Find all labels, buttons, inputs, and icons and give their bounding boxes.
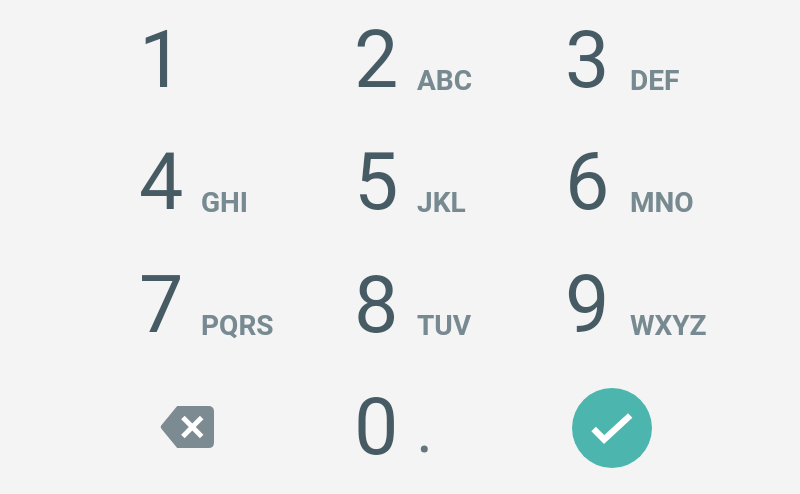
staticText: ABC [417, 64, 473, 97]
button[interactable]: 8 [318, 237, 530, 359]
staticText: 0 [354, 381, 399, 474]
button[interactable]: 0 [318, 359, 530, 481]
button[interactable]: 1 [103, 0, 315, 114]
staticText: 5 [354, 136, 399, 229]
staticText: TUV [417, 309, 472, 342]
staticText: DEF [630, 64, 680, 97]
button[interactable]: 7 [103, 237, 315, 359]
button[interactable]: 2 [318, 0, 530, 114]
staticText: 3 [565, 14, 610, 107]
button[interactable]: 5 [318, 114, 530, 236]
staticText: 9 [565, 259, 610, 352]
staticText: WXYZ [630, 309, 707, 342]
staticText: PQRS [201, 309, 274, 342]
button[interactable]: 9 [529, 237, 741, 359]
staticText: 1 [139, 14, 184, 107]
button[interactable]: 3 [529, 0, 741, 114]
button[interactable]: 4 [103, 114, 315, 236]
staticText: 7 [139, 259, 184, 352]
staticText: GHI [201, 186, 249, 219]
staticText: 8 [354, 259, 399, 352]
staticText: 6 [565, 136, 610, 229]
staticText: MNO [630, 186, 694, 219]
button[interactable]: 6 [529, 114, 741, 236]
button[interactable]: Call [572, 388, 652, 468]
staticText: 4 [139, 136, 184, 229]
button[interactable]: Backspace [118, 394, 255, 459]
staticText: JKL [417, 186, 466, 219]
staticText: 2 [354, 14, 399, 107]
